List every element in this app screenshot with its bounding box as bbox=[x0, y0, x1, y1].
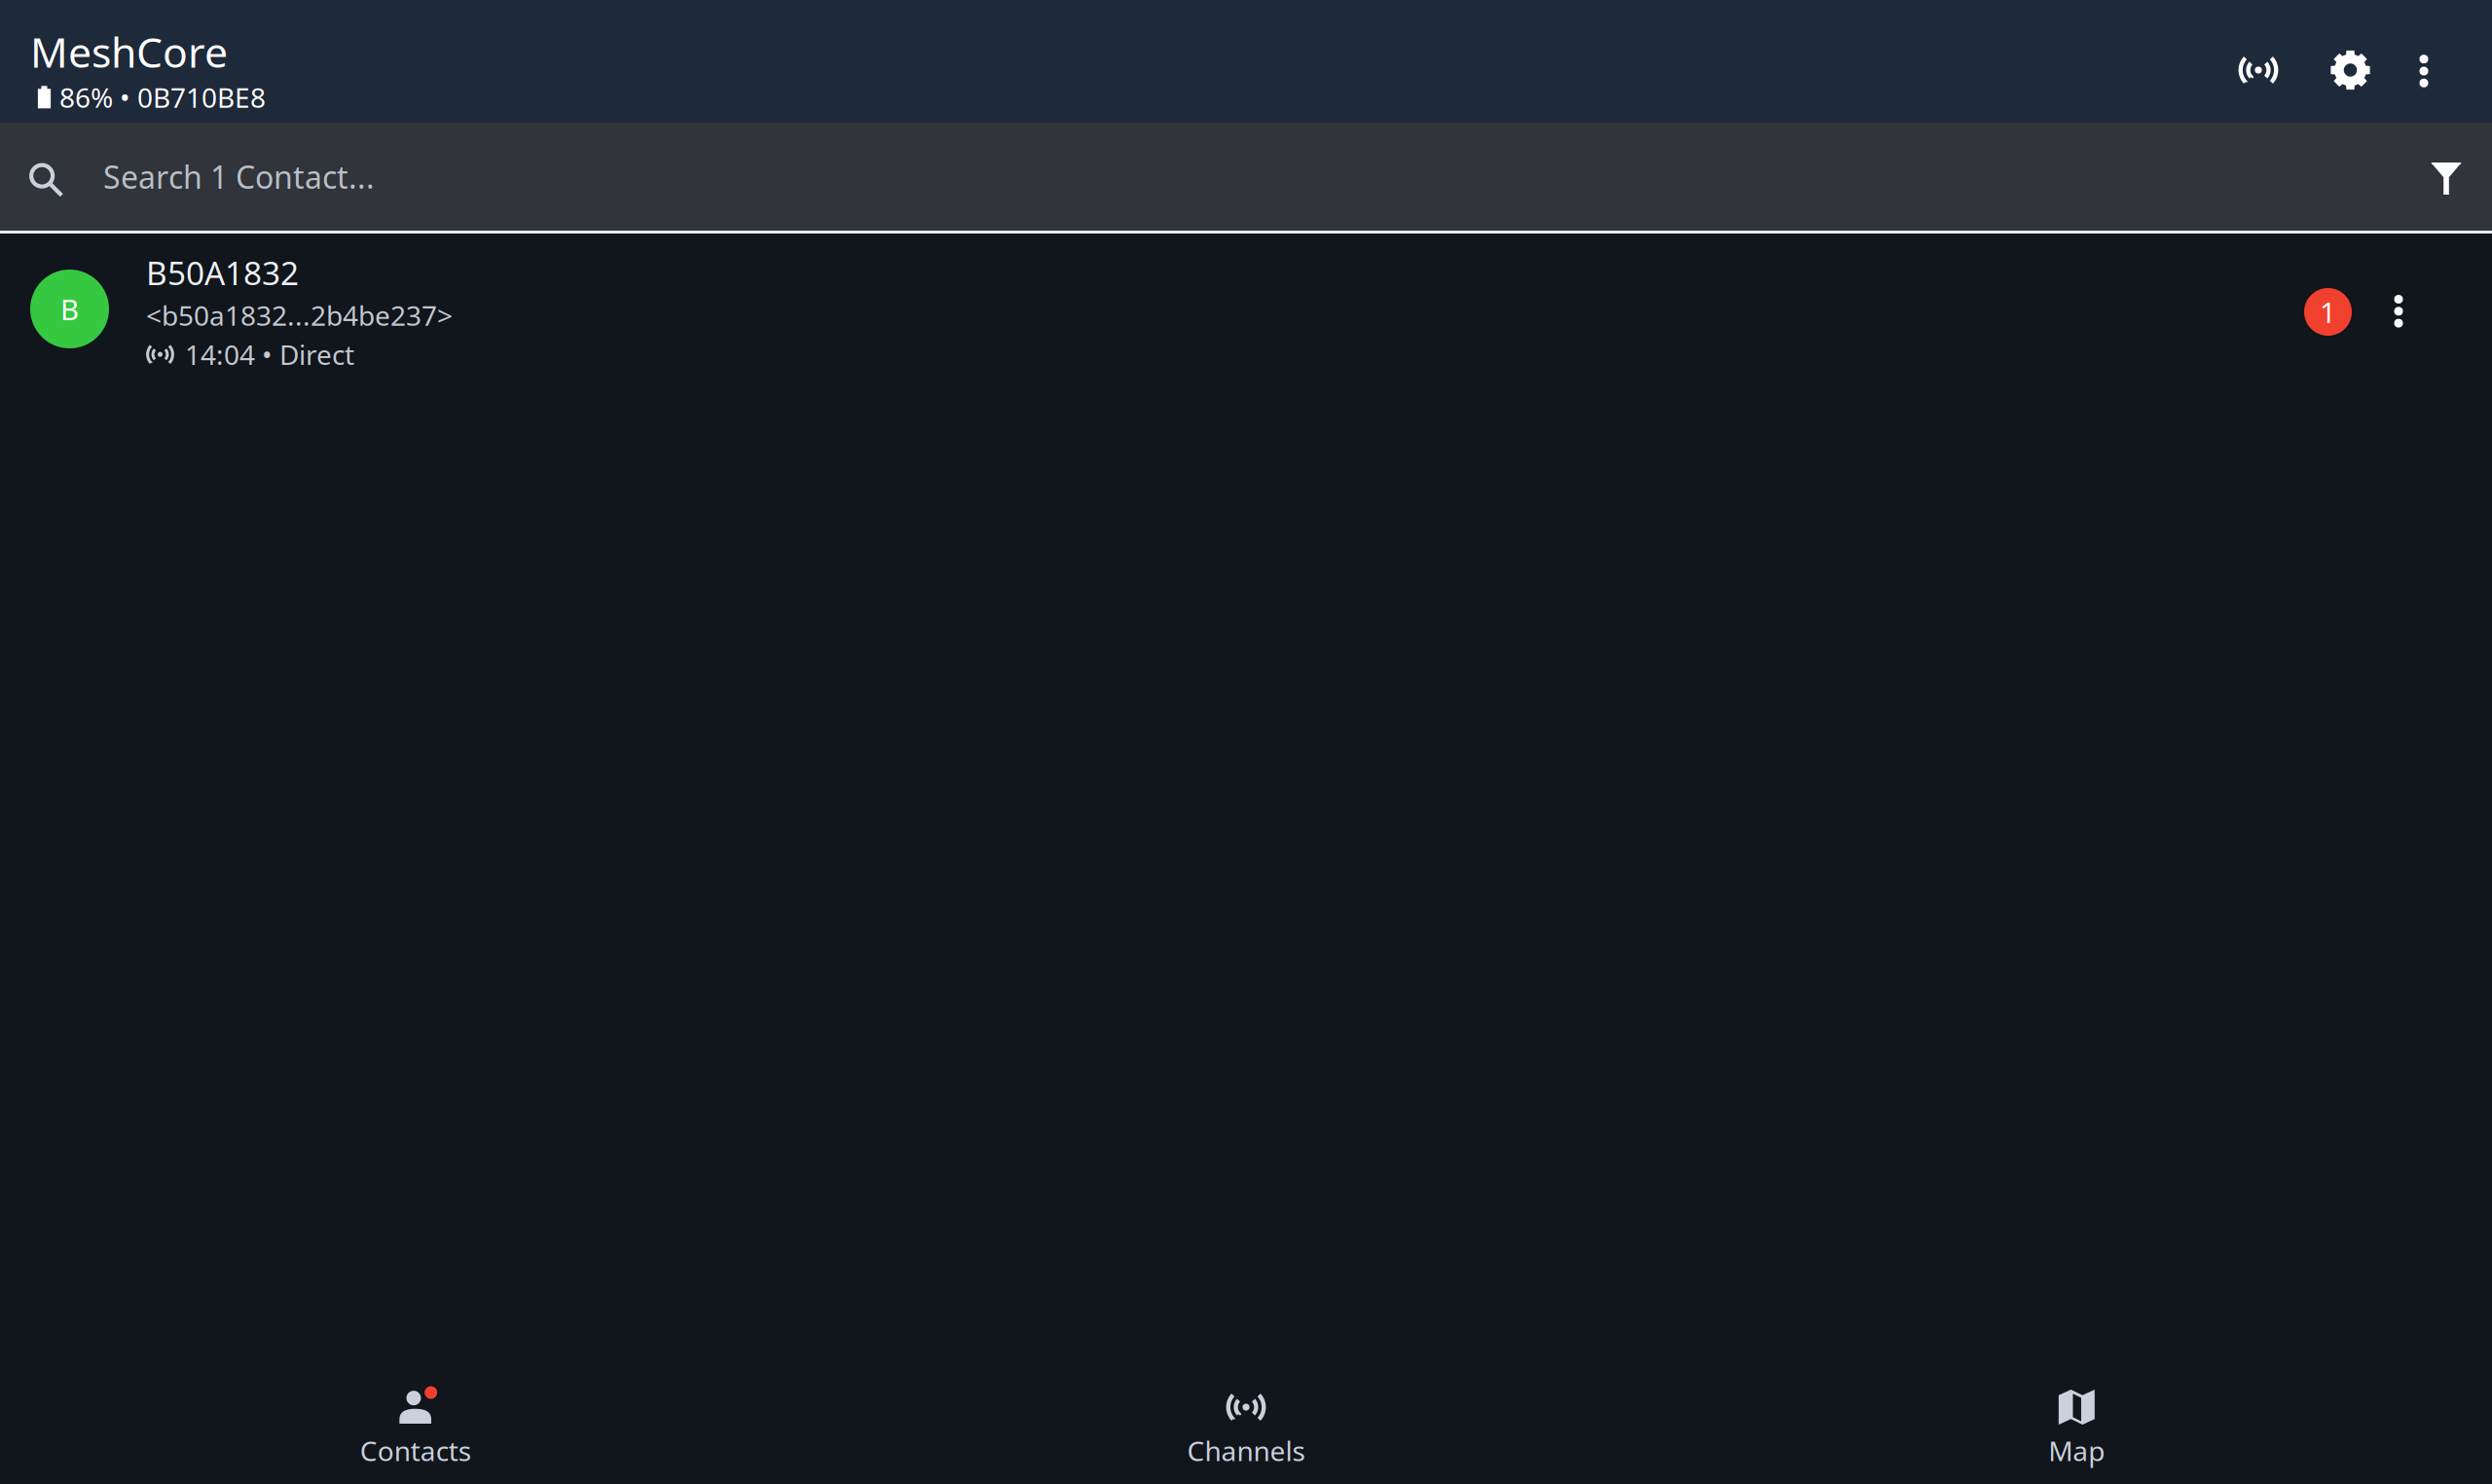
staticText: 1 bbox=[2320, 293, 2336, 331]
staticText: 14:04 • Direct bbox=[185, 336, 354, 372]
staticText: Search 1 Contact... bbox=[103, 156, 375, 197]
staticText: Map bbox=[2048, 1432, 2105, 1469]
button[interactable]: Contacts bbox=[0, 1362, 831, 1484]
button[interactable]: B bbox=[0, 234, 2492, 389]
staticText: Channels bbox=[1187, 1432, 1305, 1469]
staticText: 86% • 0B710BE8 bbox=[59, 79, 266, 115]
button[interactable]: Filter bbox=[2400, 123, 2492, 231]
staticText: MeshCore bbox=[30, 24, 228, 79]
staticText: B50A1832 bbox=[146, 251, 299, 294]
button[interactable]: More options bbox=[2390, 0, 2458, 123]
button[interactable]: Radio status bbox=[2206, 0, 2311, 123]
button[interactable]: Map bbox=[1661, 1362, 2492, 1484]
button[interactable]: Contact options bbox=[2352, 234, 2445, 389]
button[interactable]: Settings bbox=[2311, 0, 2390, 123]
button[interactable]: Search 1 Contact... bbox=[0, 123, 2400, 231]
button[interactable]: Channels bbox=[831, 1362, 1661, 1484]
staticText: Contacts bbox=[360, 1432, 471, 1469]
staticText: B bbox=[60, 290, 79, 328]
staticText: <b50a1832...2b4be237> bbox=[146, 297, 453, 333]
